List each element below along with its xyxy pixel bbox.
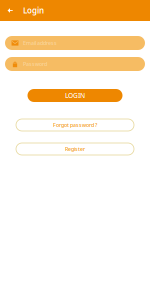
button[interactable]: Register: [16, 143, 134, 155]
staticText: Register: [65, 145, 85, 153]
button[interactable]: Password: [5, 57, 145, 71]
staticText: Password: [23, 60, 47, 68]
button[interactable]: Email address: [5, 36, 145, 50]
button[interactable]: LOGIN: [27, 89, 122, 102]
staticText: Login: [23, 5, 44, 16]
button[interactable]: Forgot password ?: [16, 119, 134, 131]
staticText: LOGIN: [65, 91, 85, 100]
staticText: Forgot password ?: [53, 121, 97, 129]
staticText: Email address: [23, 39, 57, 47]
button[interactable]: Back: [3, 0, 17, 21]
